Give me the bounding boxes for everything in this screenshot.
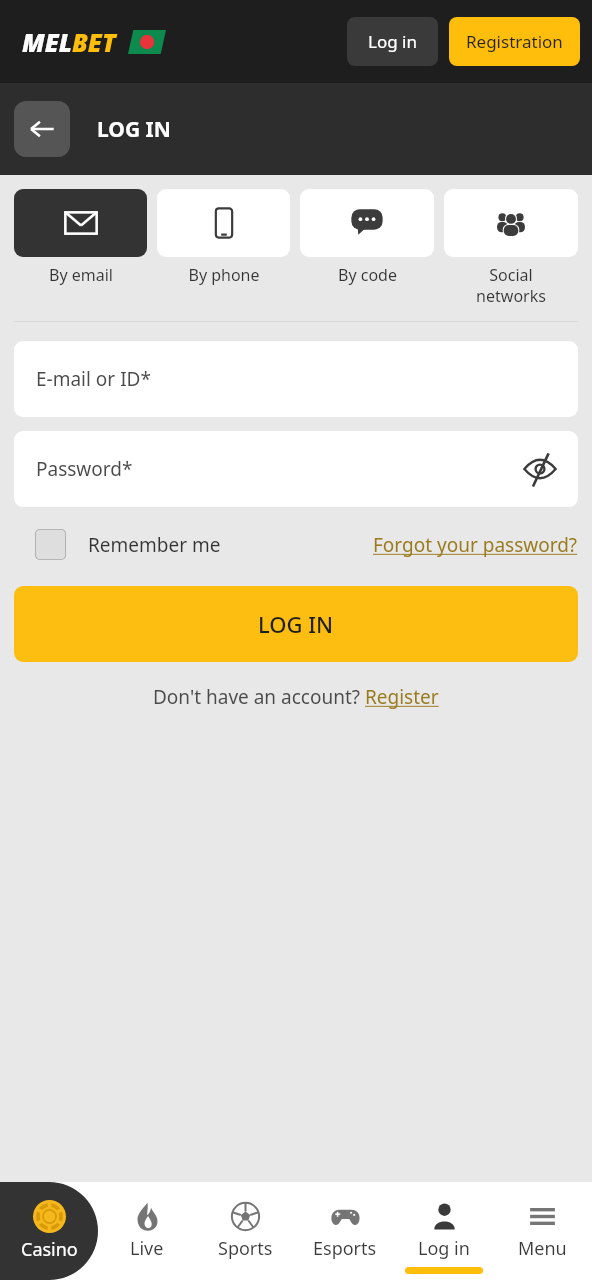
staticText: Registration [466, 30, 563, 53]
staticText: MEL [22, 25, 72, 59]
staticText: LOG IN [97, 115, 171, 144]
staticText: Remember me [88, 532, 221, 558]
button[interactable]: Menu [493, 1182, 592, 1280]
button[interactable]: Registration [449, 17, 580, 66]
staticText: Menu [518, 1236, 567, 1261]
button[interactable]: By code [300, 189, 434, 286]
staticText: Live [130, 1236, 164, 1261]
staticText: Forgot your password? [373, 532, 578, 558]
button[interactable]: Log in [347, 17, 438, 66]
button[interactable]: Esports [295, 1182, 394, 1280]
button[interactable]: LOG IN [14, 586, 578, 662]
button[interactable]: By email [14, 189, 147, 286]
button[interactable]: Show password [520, 449, 560, 489]
button[interactable]: Password* [14, 431, 578, 507]
staticText: Social networks [476, 264, 546, 307]
staticText: Password* [36, 456, 133, 482]
button[interactable]: Live [98, 1182, 196, 1280]
button[interactable]: Back [14, 101, 70, 157]
staticText: Don't have an account? [153, 684, 365, 710]
staticText: Esports [313, 1236, 377, 1261]
button[interactable]: By phone [157, 189, 290, 286]
button[interactable]: Log in [394, 1182, 493, 1280]
staticText: Casino [21, 1237, 78, 1262]
staticText: Sports [218, 1236, 273, 1261]
staticText: By code [338, 264, 397, 286]
button[interactable]: Sports [196, 1182, 295, 1280]
button[interactable]: E-mail or ID* [14, 341, 578, 417]
staticText: Log in [368, 30, 417, 53]
staticText: By phone [188, 264, 260, 286]
staticText: Log in [418, 1236, 470, 1261]
staticText: E-mail or ID* [36, 366, 151, 392]
staticText: LOG IN [258, 609, 334, 639]
button[interactable]: Casino [0, 1182, 98, 1280]
button[interactable]: Register [365, 684, 439, 710]
button[interactable]: Remember me [14, 529, 229, 560]
staticText: BET [72, 25, 116, 59]
button[interactable]: Social networks [444, 189, 578, 307]
staticText: By email [49, 264, 113, 286]
staticText: Register [365, 684, 439, 710]
button[interactable]: Forgot your password? [373, 532, 578, 558]
